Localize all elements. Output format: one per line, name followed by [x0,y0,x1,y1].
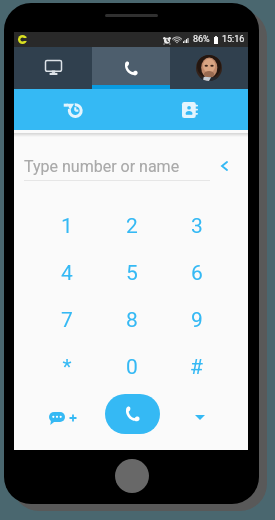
button[interactable]: New chat [44,402,98,432]
staticText: # [190,355,203,380]
button[interactable]: Contacts [131,89,248,130]
staticText: 3 [191,214,203,239]
staticText: 9 [191,308,203,333]
button[interactable]: 5 [99,250,164,297]
button[interactable]: 6 [164,250,229,297]
button[interactable]: 8 [99,297,164,344]
staticText: 1 [61,214,73,239]
button[interactable]: 4 [34,250,99,297]
staticText: 8 [126,308,138,333]
staticText: 4 [61,261,73,286]
button[interactable]: Profile [170,47,248,89]
button[interactable]: 1 [34,203,99,250]
button[interactable]: 7 [34,297,99,344]
button[interactable]: 2 [99,203,164,250]
staticText: 15:16 [222,34,245,45]
staticText: Type number or name [24,157,180,176]
staticText: * [62,355,72,380]
button[interactable]: Backspace [213,154,236,177]
staticText: 0 [126,355,138,380]
staticText: 86% [193,34,210,45]
button[interactable]: 0 [99,344,164,391]
staticText: 2 [126,214,138,239]
button[interactable]: 9 [164,297,229,344]
staticText: 7 [61,308,73,333]
staticText: 6 [191,261,203,286]
button[interactable]: Call [105,394,160,434]
button[interactable]: * [34,344,99,391]
button[interactable]: 3 [164,203,229,250]
button[interactable]: More options [188,405,212,429]
button[interactable]: Desktop [14,47,92,89]
staticText: 5 [126,261,138,286]
button[interactable]: Dialpad [92,47,170,89]
button[interactable]: # [164,344,229,391]
button[interactable]: Recents [14,89,131,130]
